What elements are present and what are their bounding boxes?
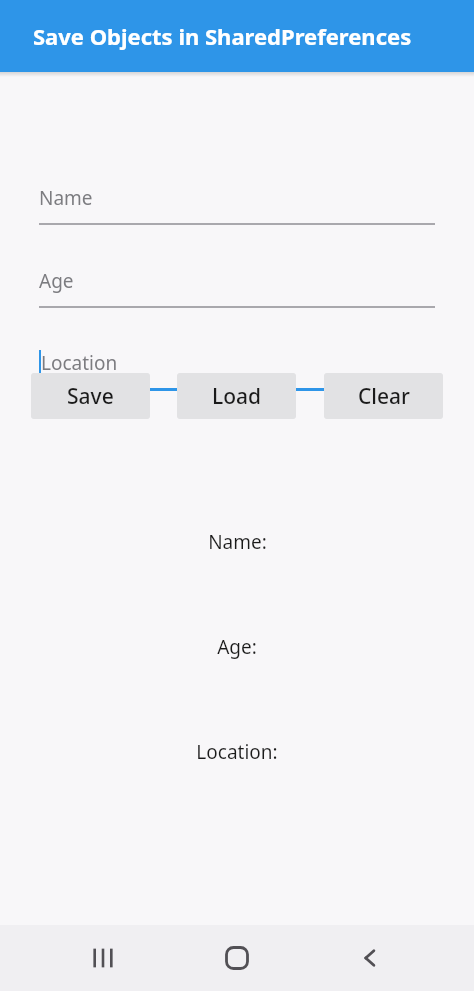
staticText: Location	[41, 350, 118, 376]
button[interactable]: Load	[177, 373, 296, 419]
staticText: Age	[39, 268, 74, 294]
staticText: Age:	[217, 634, 257, 660]
button[interactable]: Recent apps	[78, 933, 128, 983]
button[interactable]: Home	[212, 933, 262, 983]
staticText: Name:	[208, 529, 267, 555]
button[interactable]: Name	[39, 183, 435, 213]
button[interactable]: Save	[31, 373, 150, 419]
button[interactable]: Back	[346, 933, 396, 983]
staticText: Clear	[358, 382, 410, 411]
button[interactable]: Clear	[324, 373, 443, 419]
staticText: Load	[212, 382, 262, 411]
staticText: Location:	[196, 739, 278, 765]
button[interactable]: Age	[39, 266, 435, 296]
staticText: Save Objects in SharedPreferences	[33, 21, 412, 51]
button[interactable]: Location	[39, 348, 435, 378]
staticText: Save	[67, 382, 114, 411]
staticText: Name	[39, 185, 93, 211]
